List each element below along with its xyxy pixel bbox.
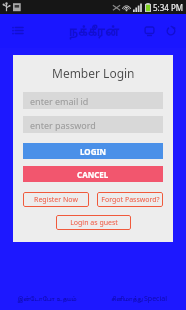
button[interactable]: LOGIN	[23, 143, 163, 159]
staticText: Register Now	[34, 195, 78, 205]
button[interactable]: Menu	[6, 20, 28, 42]
button[interactable]: enter password	[23, 116, 163, 133]
button[interactable]: Login as guest	[56, 215, 131, 230]
staticText: CANCEL	[77, 169, 109, 180]
staticText: 5:34 PM	[153, 2, 184, 13]
button[interactable]: Forgot Password?	[97, 192, 163, 207]
staticText: சினிமாத்து Special	[111, 294, 168, 304]
staticText: Member Login	[52, 65, 135, 81]
staticText: enter password	[30, 119, 96, 131]
button[interactable]: சினிமாத்து Special	[93, 288, 186, 310]
staticText: நக்கீரன்	[68, 24, 119, 39]
button[interactable]: CANCEL	[23, 166, 163, 182]
staticText: LOGIN	[80, 146, 107, 157]
staticText: Login as guest	[70, 218, 118, 228]
button[interactable]: Register Now	[23, 192, 89, 207]
staticText: enter email id	[30, 95, 89, 107]
button[interactable]: Refresh	[160, 20, 182, 42]
button[interactable]: இன்டோபோ உதயம்	[0, 288, 93, 310]
button[interactable]: Cast	[138, 20, 160, 42]
staticText: Forgot Password?	[101, 195, 160, 205]
button[interactable]: enter email id	[23, 92, 163, 109]
staticText: இன்டோபோ உதயம்	[17, 294, 77, 304]
